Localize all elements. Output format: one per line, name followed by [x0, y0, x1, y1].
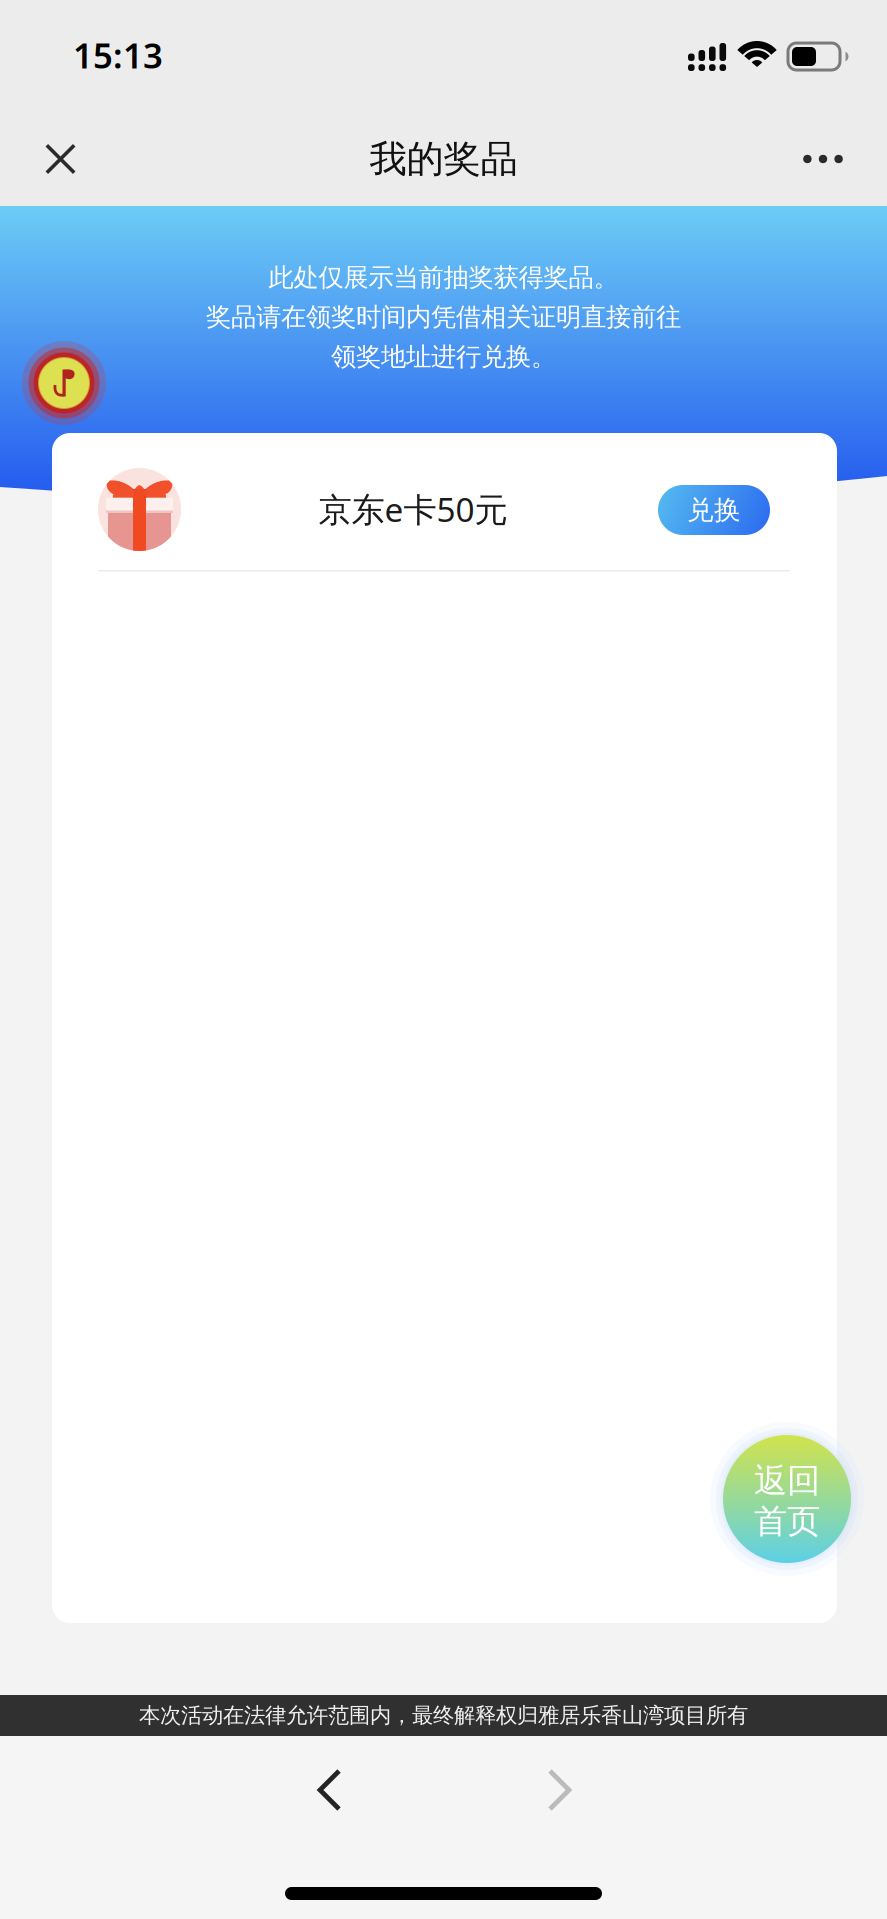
button[interactable]: Music toggle	[21, 340, 107, 426]
staticText: 15:13	[73, 32, 163, 78]
staticText: 返回	[754, 1460, 820, 1501]
button[interactable]: Forward	[513, 1744, 606, 1836]
button[interactable]: More options	[780, 121, 866, 196]
staticText: 首页	[754, 1501, 820, 1542]
button[interactable]: Close	[21, 121, 100, 196]
button[interactable]: Back	[283, 1744, 376, 1836]
button[interactable]: 返回	[712, 1424, 862, 1574]
staticText: 我的奖品	[369, 136, 517, 182]
staticText: 兑换	[687, 494, 741, 526]
staticText: 奖品请在领奖时间内凭借相关证明直接前往	[206, 302, 681, 333]
staticText: 此处仅展示当前抽奖获得奖品。	[268, 262, 618, 293]
staticText: 领奖地址进行兑换。	[331, 341, 556, 372]
button[interactable]: 京东e卡50元	[52, 433, 836, 571]
staticText: 京东e卡50元	[318, 487, 507, 531]
button[interactable]: 兑换	[658, 485, 770, 535]
staticText: 本次活动在法律允许范围内，最终解释权归雅居乐香山湾项目所有	[139, 1702, 748, 1729]
